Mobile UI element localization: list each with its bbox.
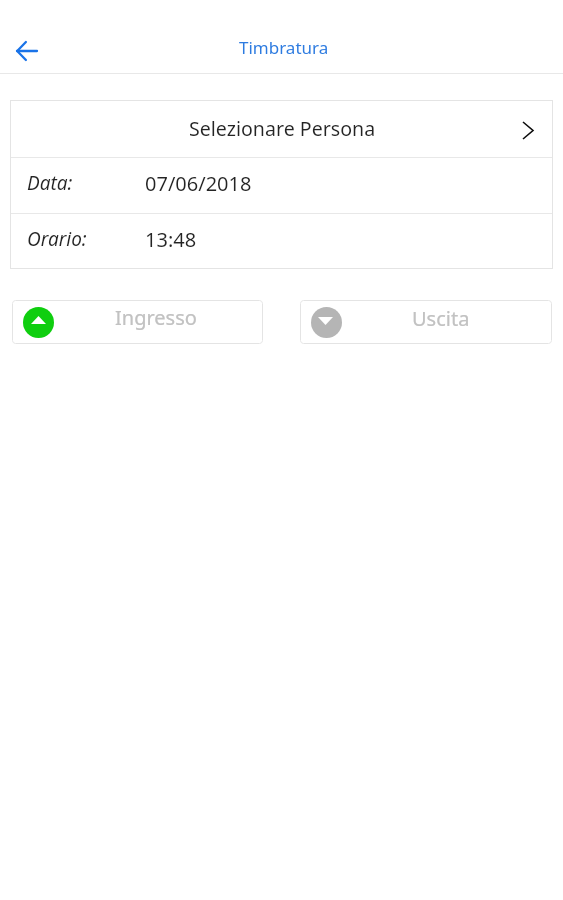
button[interactable]: Uscita (300, 300, 552, 344)
staticText: Selezionare Persona (189, 115, 376, 142)
staticText: 07/06/2018 (145, 170, 252, 197)
staticText: 13:48 (145, 226, 197, 253)
button[interactable]: Orario: (10, 214, 553, 269)
staticText: Ingresso (115, 304, 197, 331)
button[interactable]: Ingresso (12, 300, 263, 344)
staticText: Timbratura (239, 36, 329, 59)
staticText: Uscita (412, 305, 470, 332)
staticText: Orario: (27, 226, 87, 252)
button[interactable]: Data: (10, 158, 553, 213)
button[interactable]: Back (3, 27, 51, 75)
button[interactable]: Selezionare Persona (10, 100, 553, 157)
staticText: Data: (27, 170, 73, 196)
